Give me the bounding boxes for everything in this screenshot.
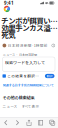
staticText: 効里手ンカス溢れ大 [1,22,58,33]
staticText: この結果を翻訳しますか [7,73,42,79]
button[interactable]: すべて表示 [21,103,39,109]
staticText: 検索ワードを入力して [5,59,45,65]
staticText: 日本経済新聞·1時間前 [8,43,48,48]
button[interactable]: 翻訳 [45,74,54,78]
staticText: 関連するおすすめの検索結果について [2,82,53,87]
staticText: ニュース [2,103,17,109]
staticText: チンボが餌買い助か [1,15,58,26]
button[interactable]: Forward [12,117,23,128]
button[interactable]: 日本経済新聞·1時間前 [0,43,58,48]
button[interactable]: Tabs [46,117,58,128]
button[interactable]: Back [0,117,12,128]
button[interactable]: Bookmarks [35,117,46,128]
staticText: すべて表示 [21,103,39,109]
staticText: 死気 [1,29,15,40]
button[interactable]: 検索ワードを入力して [2,57,55,71]
staticText: その他の検索結果 [2,94,34,101]
button[interactable]: ニュース [2,103,17,109]
staticText: 9:41 [4,0,14,6]
button[interactable]: Share [23,117,35,128]
staticText: ニュース · 日本経済新聞 [3,52,37,57]
button[interactable]: 関連するおすすめの検索結果について [2,82,53,87]
staticText: 翻訳 [47,74,53,78]
